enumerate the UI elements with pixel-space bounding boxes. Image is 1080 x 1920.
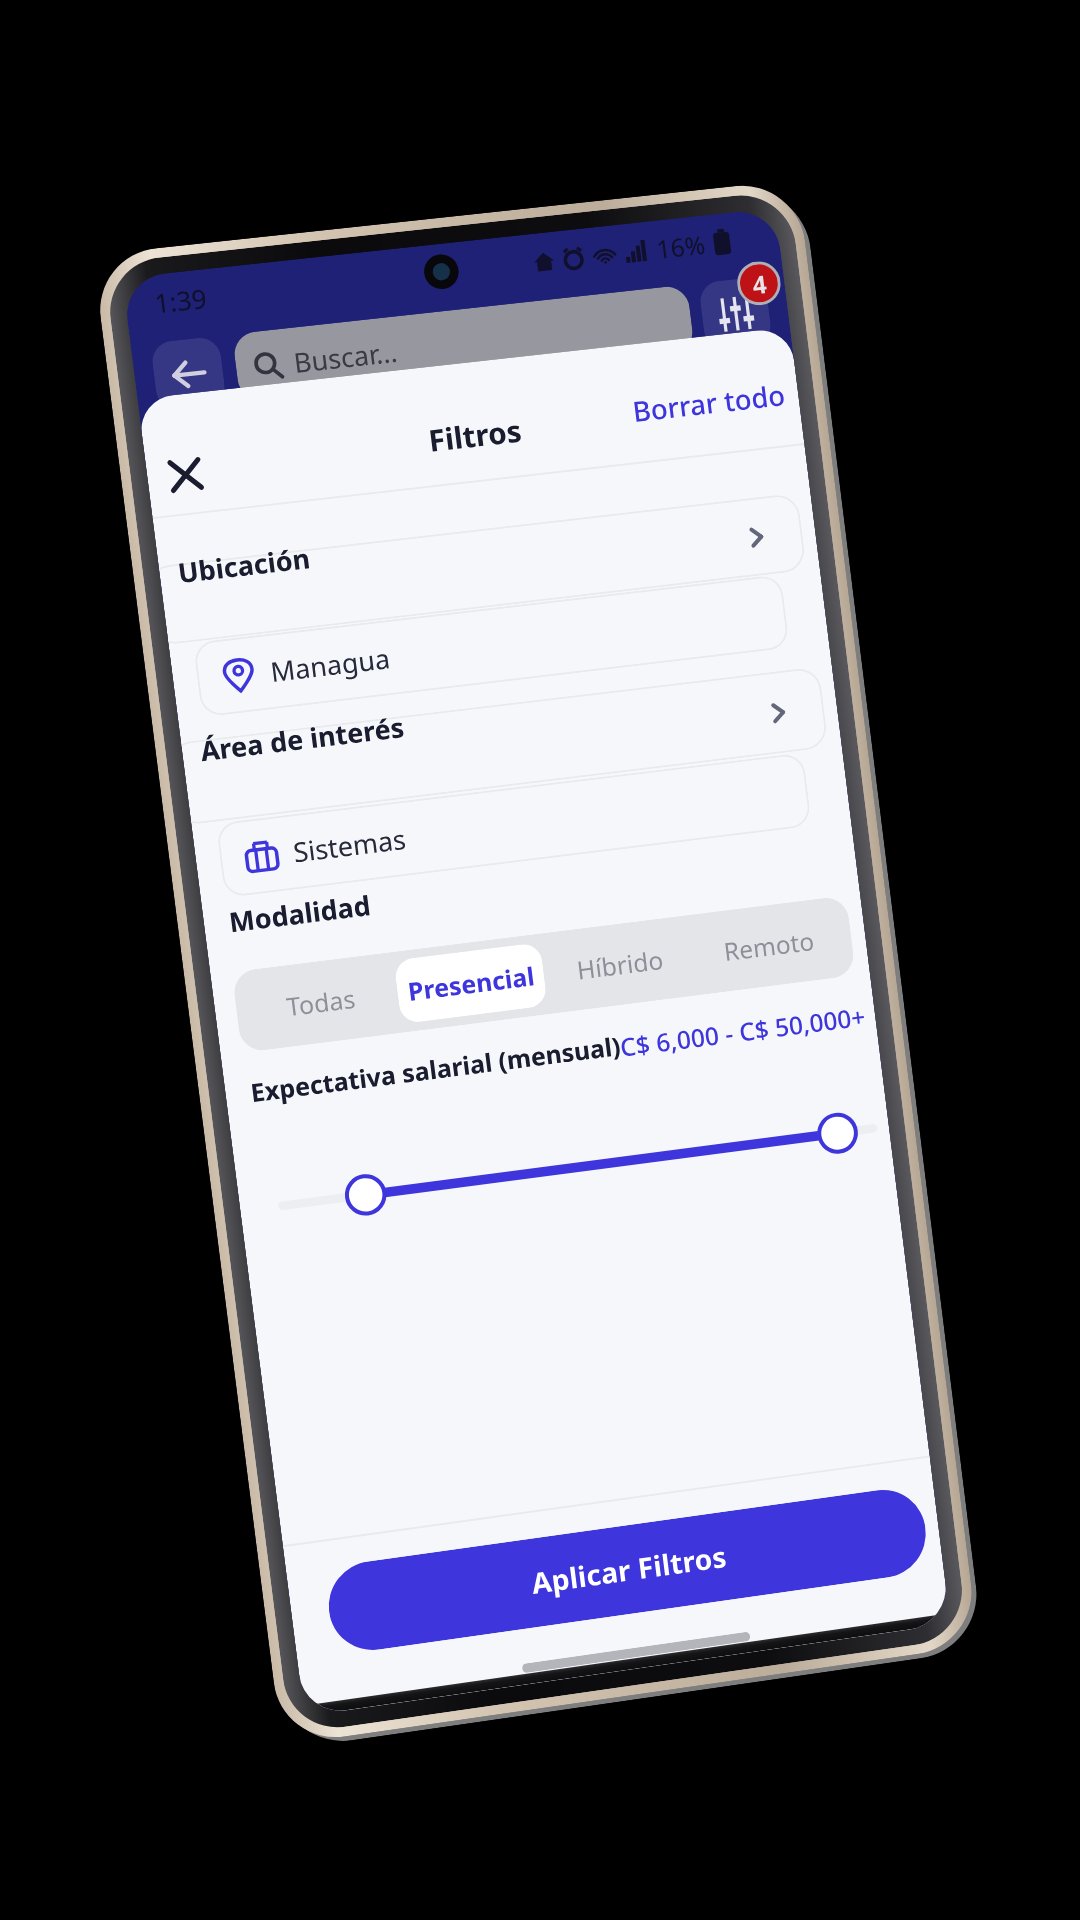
staticText: Borrar todo — [630, 376, 787, 430]
button[interactable]: Sistemas — [216, 752, 812, 898]
staticText: Aplicar Filtros — [529, 1536, 729, 1603]
button[interactable]: Aplicar Filtros — [323, 1484, 931, 1656]
staticText: Sistemas — [291, 820, 408, 870]
staticText: Ubicación — [176, 539, 312, 591]
staticText: Presencial — [406, 958, 536, 1008]
button[interactable] — [181, 666, 829, 825]
staticText: 16% — [654, 227, 707, 265]
button[interactable]: Remoto — [693, 905, 845, 986]
button[interactable]: Back — [150, 336, 227, 411]
button[interactable]: Híbrido — [544, 923, 697, 1005]
staticText: Modalidad — [227, 886, 373, 940]
staticText: Managua — [268, 639, 392, 690]
button[interactable]: Todas — [243, 961, 398, 1043]
staticText: Remoto — [722, 923, 816, 968]
button[interactable]: Managua — [193, 574, 790, 717]
staticText: Buscar... — [292, 333, 399, 381]
button[interactable] — [159, 493, 807, 645]
button[interactable]: Close — [150, 440, 220, 509]
staticText: 4 — [750, 266, 769, 301]
staticText: Híbrido — [575, 942, 666, 986]
staticText: Área de interés — [198, 708, 406, 769]
staticText: Filtros — [426, 410, 524, 460]
staticText: C$ 6,000 - C$ 50,000+ — [618, 999, 868, 1063]
staticText: Expectativa salarial (mensual) — [249, 1028, 623, 1109]
button[interactable]: Buscar... — [232, 284, 695, 402]
button[interactable]: Open filters — [698, 276, 773, 351]
button[interactable]: Borrar todo — [620, 365, 798, 440]
staticText: Todas — [284, 981, 358, 1023]
button[interactable]: Presencial — [393, 942, 548, 1024]
staticText: 1:39 — [152, 280, 209, 321]
